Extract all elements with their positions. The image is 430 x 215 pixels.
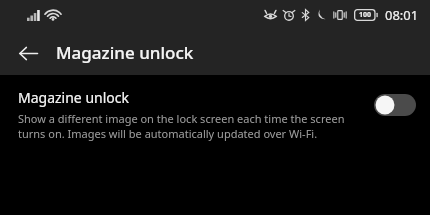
staticText: Magazine unlock (18, 88, 129, 107)
staticText: Show a different image on the lock scree… (18, 111, 362, 141)
button[interactable]: Magazine unlock toggle (374, 94, 416, 116)
button[interactable]: Back (8, 33, 48, 73)
staticText: 100 (359, 10, 372, 20)
staticText: Magazine unlock (56, 41, 194, 64)
staticText: 08:01 (385, 6, 419, 24)
button[interactable]: Magazine unlock (0, 75, 430, 157)
